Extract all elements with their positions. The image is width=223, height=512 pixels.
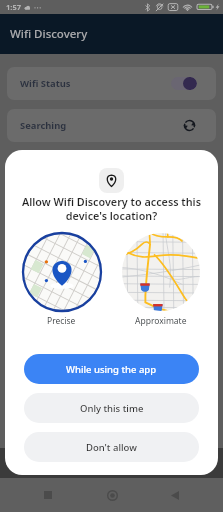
staticText: Only this time [80,402,144,415]
staticText: 1:57 [6,2,21,12]
staticText: Scan [31,457,44,464]
staticText: Don't allow [86,441,137,454]
staticText: Devices [102,457,122,464]
staticText: Approximate [135,315,187,327]
staticText: Allow Wifi Discovery to access this devi… [20,194,203,223]
staticText: While using the app [66,363,157,376]
staticText: Precise [47,315,76,327]
button[interactable]: Info [149,448,223,478]
other: Refresh [182,118,197,133]
button[interactable]: Wifi Status [7,67,216,100]
button[interactable]: Precise [12,232,111,327]
staticText: Searching [20,119,67,132]
staticText: Info [181,457,192,464]
button[interactable]: Recents [33,480,63,510]
button[interactable]: Approximate [111,232,211,327]
button[interactable]: Only this time [24,393,199,423]
button[interactable]: While using the app [24,354,199,384]
button[interactable]: Devices [75,448,149,478]
button[interactable]: Back [160,480,190,510]
button[interactable]: Scan [0,448,75,478]
button[interactable]: Home [97,480,127,510]
staticText: Wifi Discovery [10,26,88,42]
staticText: Wifi Status [20,77,71,90]
button[interactable]: Don't allow [24,432,199,462]
button[interactable]: Searching [7,109,216,142]
